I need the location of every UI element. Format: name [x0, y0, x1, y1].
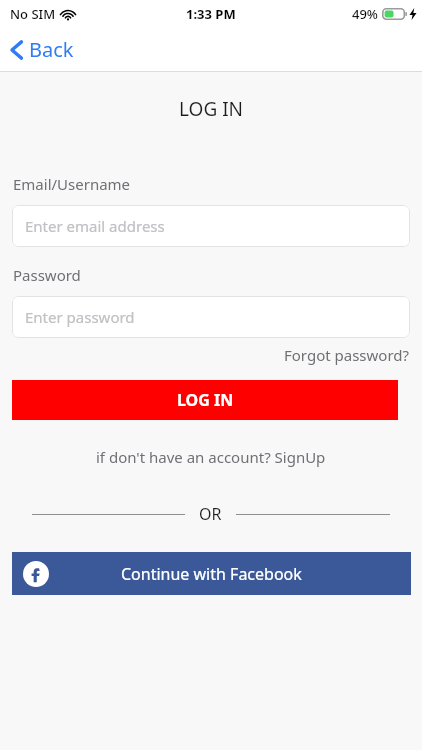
- other: Facebook: [23, 561, 49, 587]
- staticText: Email/Username: [13, 174, 131, 194]
- staticText: OR: [199, 503, 222, 525]
- staticText: 49%: [352, 5, 378, 23]
- staticText: Continue with Facebook: [121, 563, 302, 585]
- button[interactable]: Forgot password?: [284, 343, 422, 367]
- staticText: 1:33 PM: [186, 5, 236, 23]
- staticText: Enter password: [25, 307, 135, 327]
- staticText: Back: [29, 36, 74, 63]
- staticText: Password: [13, 265, 81, 285]
- staticText: Forgot password?: [284, 345, 410, 365]
- staticText: LOG IN: [177, 389, 234, 411]
- button[interactable]: Continue with Facebook: [12, 552, 411, 595]
- staticText: LOG IN: [0, 96, 422, 122]
- button[interactable]: if don't have an account? SignUp: [0, 447, 422, 467]
- staticText: if don't have an account? SignUp: [96, 447, 326, 467]
- button[interactable]: Back: [0, 30, 88, 69]
- button[interactable]: Enter email address: [12, 205, 410, 247]
- button[interactable]: LOG IN: [12, 380, 398, 420]
- staticText: No SIM: [10, 5, 56, 23]
- button[interactable]: Enter password: [12, 296, 410, 338]
- staticText: Enter email address: [25, 216, 165, 236]
